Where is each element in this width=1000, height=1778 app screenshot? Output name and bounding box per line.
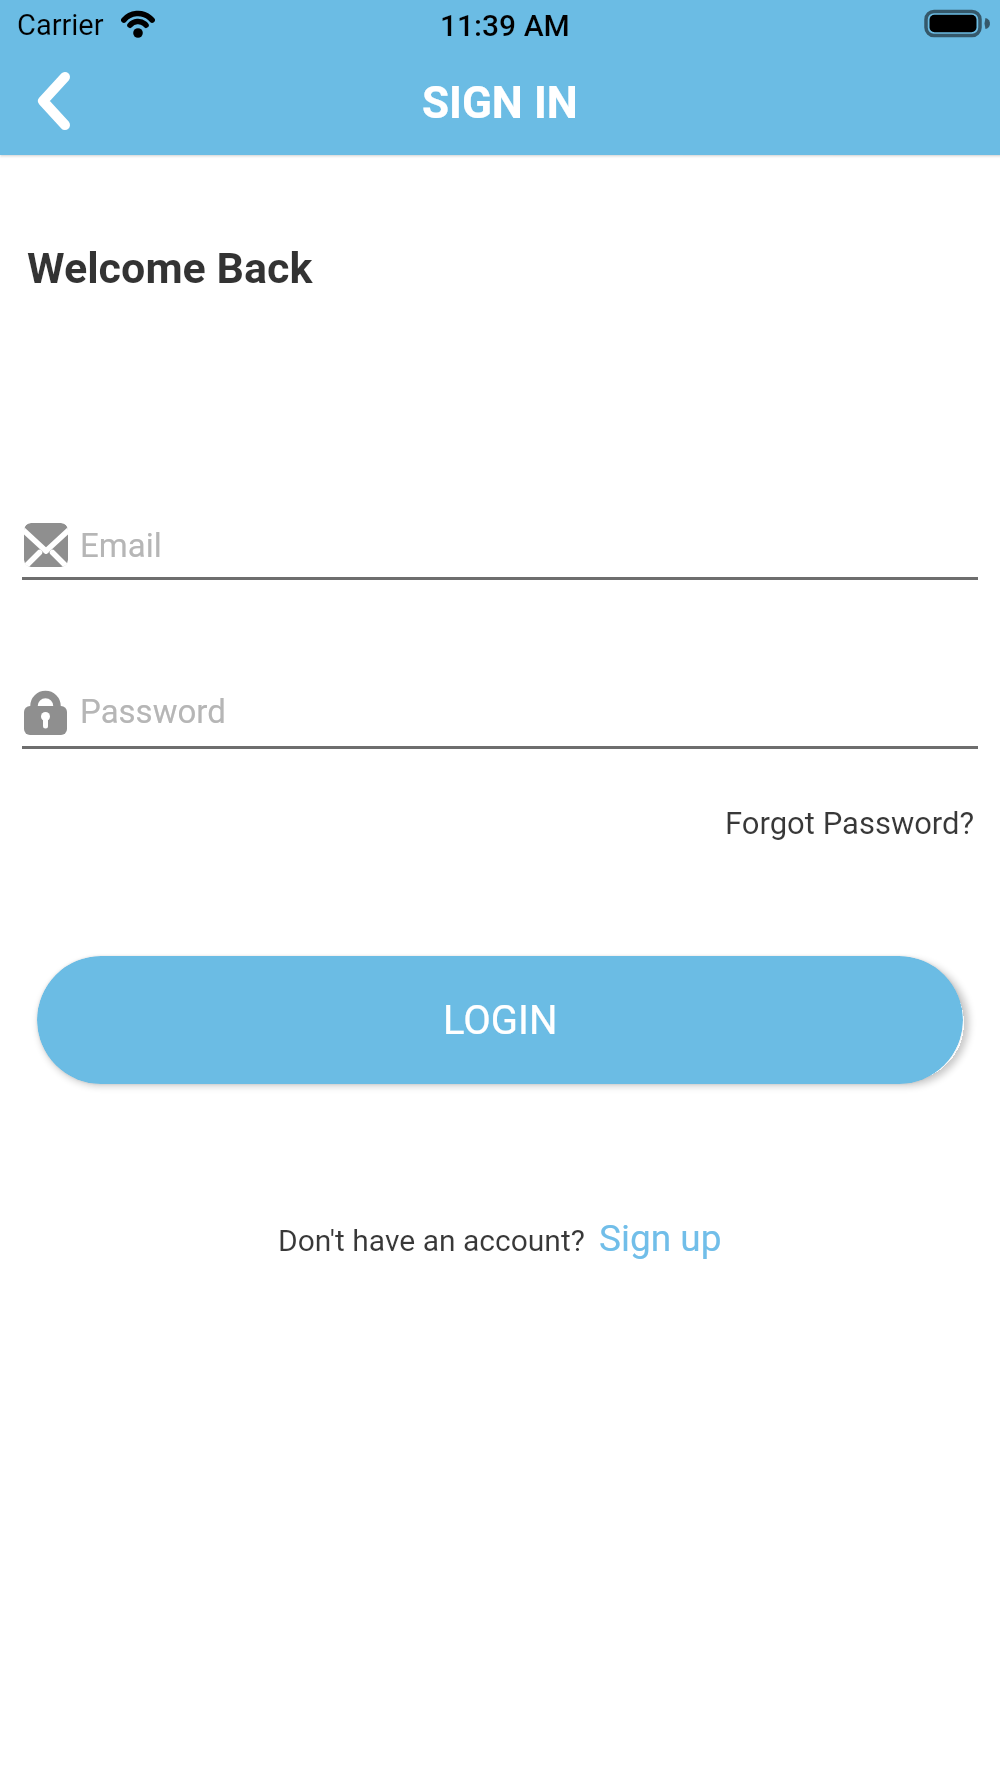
staticText: Password	[80, 692, 226, 731]
staticText: SIGN IN	[422, 77, 578, 129]
staticText: Don't have an account?	[278, 1223, 585, 1258]
staticText: Welcome Back	[27, 243, 313, 293]
staticText: 11:39 AM	[440, 8, 570, 43]
staticText: Email	[80, 526, 162, 565]
staticText: Carrier	[17, 8, 104, 42]
staticText: Sign up	[599, 1217, 722, 1260]
staticText: LOGIN	[443, 997, 558, 1044]
staticText: Forgot Password?	[725, 805, 975, 841]
